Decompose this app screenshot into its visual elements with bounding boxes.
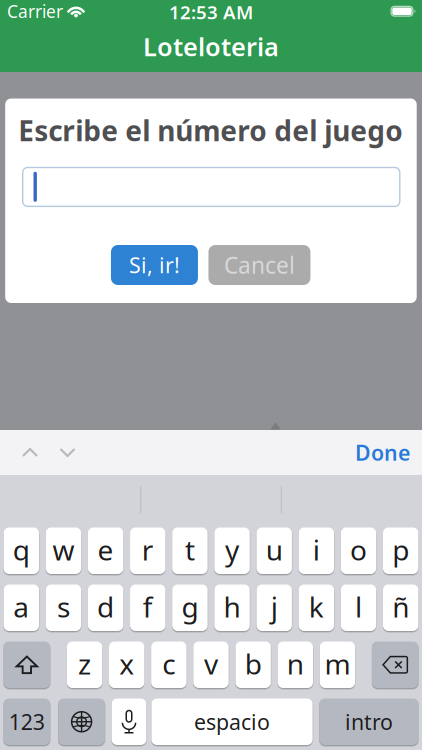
staticText: Si, ir! (129, 251, 180, 279)
staticText: z (78, 645, 91, 682)
staticText: x (119, 645, 134, 682)
button[interactable]: a (4, 584, 39, 631)
staticText: 123 (9, 708, 45, 736)
staticText: ñ (392, 588, 409, 625)
staticText: b (245, 645, 262, 682)
staticText: e (98, 531, 114, 568)
staticText: c (162, 645, 175, 682)
button[interactable]: Shift (4, 641, 50, 688)
staticText: intro (345, 708, 393, 736)
button[interactable]: b (235, 641, 271, 688)
staticText: 12:53 AM (169, 0, 253, 24)
staticText: f (143, 588, 153, 625)
button[interactable]: Next field (52, 430, 82, 475)
staticText: Loteloteria (143, 30, 279, 63)
staticText: g (181, 588, 198, 625)
staticText: r (142, 531, 154, 568)
button[interactable]: u (256, 527, 292, 574)
button[interactable]: Next keyboard (58, 698, 105, 745)
button[interactable]: v (193, 641, 229, 688)
staticText: espacio (194, 708, 270, 736)
button[interactable]: y (214, 527, 250, 574)
staticText: v (204, 645, 218, 682)
button[interactable]: Dictate (112, 698, 146, 745)
button[interactable]: s (46, 584, 81, 631)
button[interactable]: intro (319, 698, 418, 745)
button[interactable]: Número del juego (22, 167, 400, 207)
staticText: m (324, 645, 350, 682)
button[interactable]: Numbers (4, 698, 50, 745)
staticText: o (350, 531, 367, 568)
staticText: Escribe el número del juego (18, 112, 403, 149)
button[interactable]: m (320, 641, 355, 688)
staticText: Carrier (7, 0, 63, 23)
button[interactable]: Cancel (208, 245, 310, 285)
button[interactable]: espacio (151, 698, 313, 745)
button[interactable]: Done (355, 438, 410, 467)
staticText: p (392, 531, 409, 568)
button[interactable]: h (214, 584, 250, 631)
button[interactable]: k (299, 584, 334, 631)
button[interactable]: r (130, 527, 165, 574)
button[interactable]: z (67, 641, 102, 688)
staticText: y (225, 531, 239, 568)
button[interactable]: l (341, 584, 376, 631)
staticText: a (13, 588, 29, 625)
staticText: u (266, 531, 283, 568)
button[interactable]: e (88, 527, 123, 574)
staticText: n (287, 645, 304, 682)
button[interactable]: q (4, 527, 39, 574)
button[interactable]: Previous field (15, 430, 45, 475)
button[interactable]: f (130, 584, 165, 631)
button[interactable]: Delete (372, 641, 418, 688)
staticText: d (97, 588, 114, 625)
button[interactable]: c (151, 641, 186, 688)
button[interactable]: g (172, 584, 208, 631)
staticText: w (52, 531, 74, 568)
staticText: s (57, 588, 70, 625)
button[interactable]: i (299, 527, 334, 574)
staticText: t (185, 531, 195, 568)
staticText: l (355, 588, 362, 625)
button[interactable]: w (46, 527, 81, 574)
button[interactable]: n (278, 641, 313, 688)
button[interactable]: d (88, 584, 123, 631)
staticText: q (13, 531, 30, 568)
staticText: k (309, 588, 324, 625)
staticText: i (313, 531, 320, 568)
button[interactable]: p (383, 527, 418, 574)
button[interactable]: Si, ir! (111, 245, 198, 285)
button[interactable]: t (172, 527, 208, 574)
staticText: Done (355, 438, 410, 467)
button[interactable]: j (256, 584, 292, 631)
staticText: Cancel (224, 250, 295, 280)
staticText: j (271, 588, 278, 625)
staticText: h (223, 588, 240, 625)
button[interactable]: x (109, 641, 144, 688)
button[interactable]: ñ (383, 584, 418, 631)
button[interactable]: o (341, 527, 376, 574)
